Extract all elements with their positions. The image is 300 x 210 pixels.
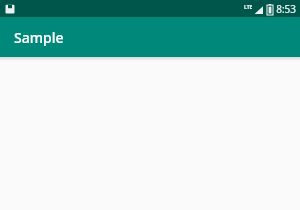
button[interactable]: Sample	[0, 17, 300, 57]
staticText: LTE	[244, 4, 253, 11]
staticText: 8:53	[276, 2, 296, 16]
other: Signal strength	[254, 5, 263, 15]
other: Battery	[267, 4, 273, 15]
other: Notification	[5, 4, 15, 14]
staticText: Sample	[14, 28, 64, 47]
